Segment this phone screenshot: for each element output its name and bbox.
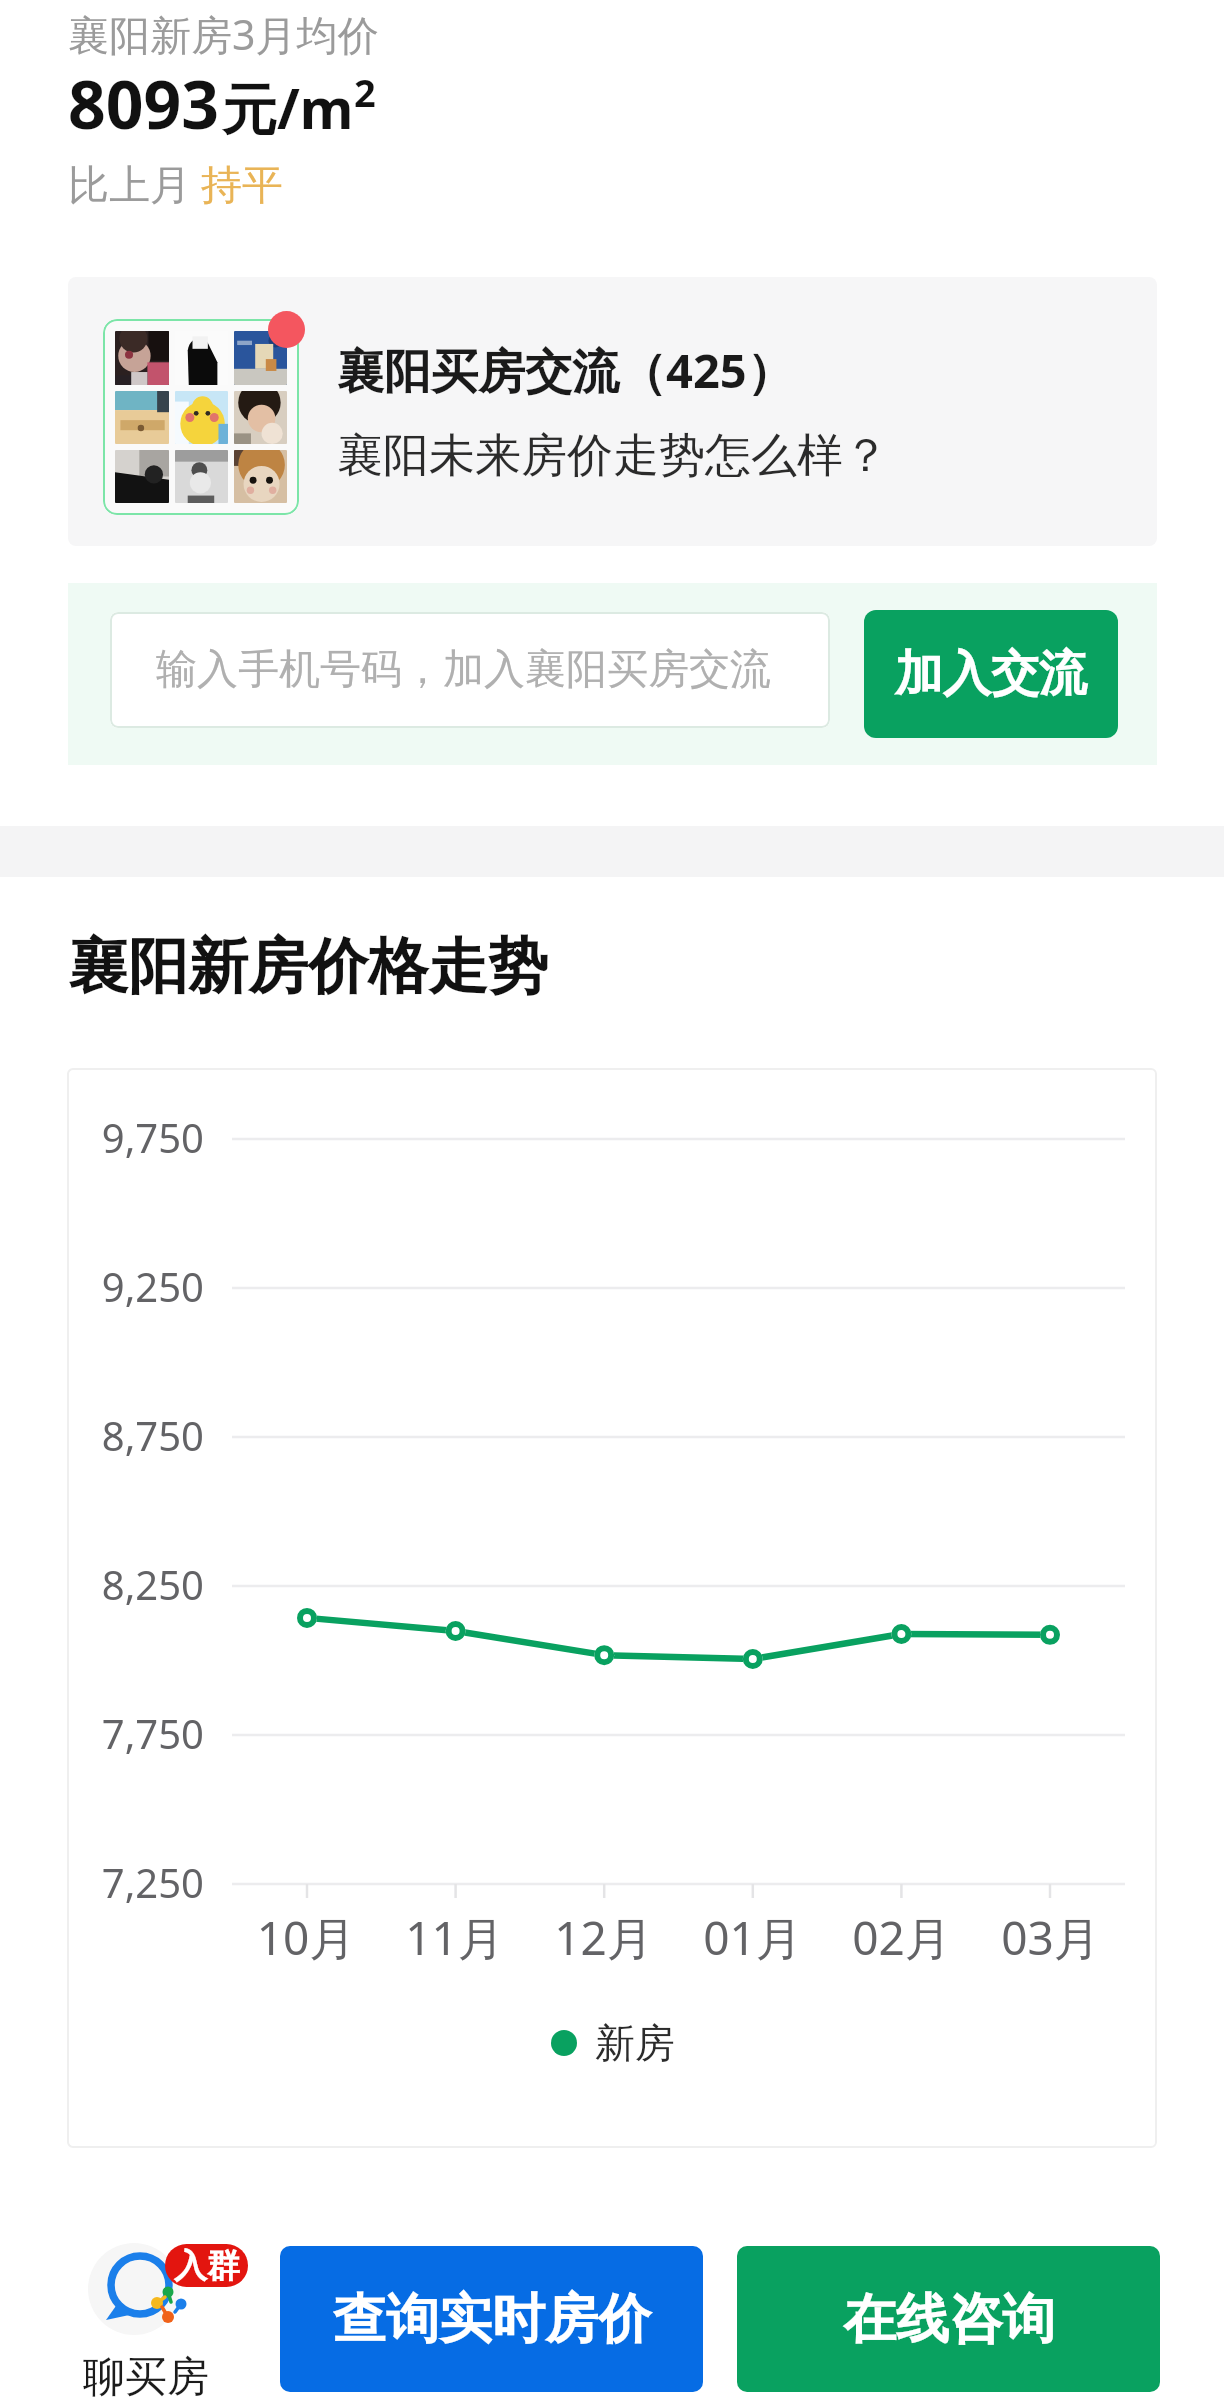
staticText: 输入手机号码，加入襄阳买房交流 [156,644,771,696]
staticText: 02月 [827,1906,976,1969]
staticText: 加入交流 [895,644,1087,704]
staticText: 8,250 [82,1557,204,1611]
button[interactable]: 查询实时房价 [280,2246,703,2392]
button[interactable]: 襄阳买房交流（425） [68,277,1157,546]
staticText: 新房 [595,2018,675,2068]
button[interactable]: 聊买房 [83,2239,233,2399]
staticText: 元/m [222,70,354,145]
staticText: 襄阳未来房价走势怎么样？ [337,427,889,485]
button[interactable]: 在线咨询 [737,2246,1160,2392]
staticText: 10月 [232,1906,380,1969]
staticText: 8093 [68,58,220,148]
staticText: 2 [354,66,376,118]
staticText: 在线咨询 [843,2286,1055,2353]
staticText: 入群 [174,2245,240,2287]
staticText: 01月 [678,1906,827,1969]
staticText: 7,750 [82,1706,204,1760]
staticText: 襄阳买房交流（425） [337,338,794,402]
staticText: 11月 [380,1906,529,1969]
other: 聊买房 [83,2239,233,2339]
staticText: 持平 [201,160,283,212]
staticText: 9,750 [82,1110,204,1164]
button[interactable]: 输入手机号码，加入襄阳买房交流 [110,612,830,728]
staticText: 7,250 [82,1855,204,1909]
staticText: 03月 [976,1906,1125,1969]
staticText: 查询实时房价 [333,2286,651,2353]
staticText: 襄阳新房价格走势 [68,929,548,1005]
staticText: 8,750 [82,1408,204,1462]
staticText: 12月 [529,1906,678,1969]
button[interactable]: 加入交流 [864,610,1118,738]
staticText: 襄阳新房3月均价 [68,6,379,62]
staticText: 聊买房 [83,2351,209,2404]
staticText: 9,250 [82,1259,204,1313]
staticText: 比上月 [68,160,191,212]
